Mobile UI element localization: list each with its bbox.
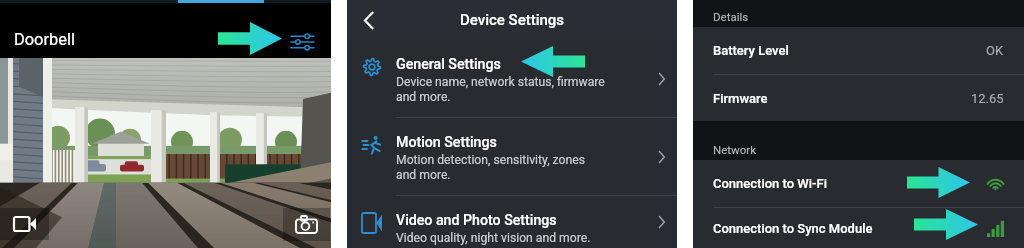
staticText: Device Settings bbox=[460, 11, 565, 29]
button[interactable]: Connection to Sync Module bbox=[693, 208, 1024, 248]
staticText: Motion Settings bbox=[396, 134, 497, 151]
staticText: Connection to Sync Module bbox=[713, 221, 873, 236]
button[interactable]: Record video bbox=[0, 208, 49, 240]
staticText: Device name, network status, firmware an… bbox=[396, 75, 605, 104]
button[interactable]: Connection to Wi-Fi bbox=[693, 160, 1024, 207]
button[interactable]: Motion Settings bbox=[347, 118, 677, 195]
staticText: Motion detection, sensitivity, zones and… bbox=[396, 153, 585, 182]
button[interactable]: Settings bbox=[280, 20, 324, 64]
button[interactable]: General Settings bbox=[347, 40, 677, 117]
button[interactable]: Back bbox=[350, 1, 388, 39]
button[interactable]: Battery Level bbox=[693, 27, 1024, 74]
button[interactable]: Firmware bbox=[693, 75, 1024, 121]
button[interactable]: Video and Photo Settings bbox=[347, 196, 677, 248]
staticText: Doorbell bbox=[14, 30, 75, 49]
staticText: OK bbox=[986, 43, 1004, 58]
staticText: General Settings bbox=[396, 56, 501, 73]
staticText: Battery Level bbox=[713, 43, 789, 58]
staticText: 12.65 bbox=[971, 91, 1004, 106]
staticText: Video quality, night vision and more. bbox=[396, 231, 591, 245]
staticText: Details bbox=[713, 10, 749, 23]
staticText: Connection to Wi-Fi bbox=[713, 176, 828, 191]
staticText: Video and Photo Settings bbox=[396, 212, 557, 229]
button[interactable]: Take photo bbox=[283, 208, 330, 241]
staticText: Network bbox=[713, 143, 756, 156]
staticText: Firmware bbox=[713, 91, 768, 106]
